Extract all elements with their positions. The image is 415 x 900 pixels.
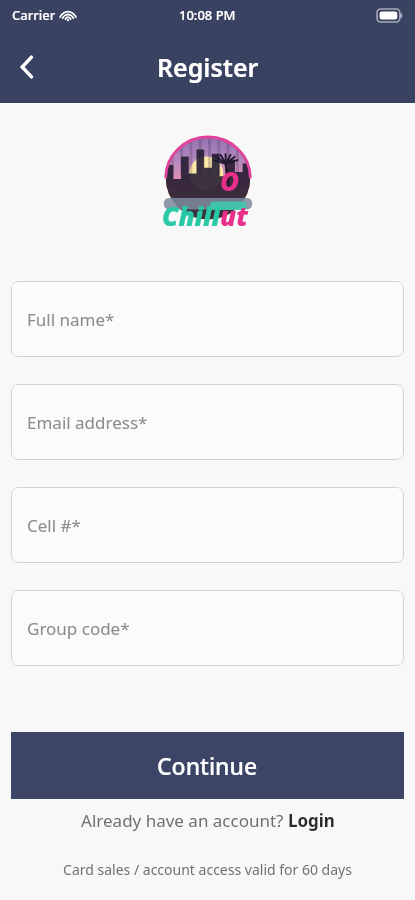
staticText: 10:08 PM: [179, 6, 236, 24]
staticText: Register: [157, 50, 259, 84]
staticText: Email address*: [27, 411, 148, 434]
button[interactable]: Group code*: [11, 590, 404, 666]
button[interactable]: Email address*: [11, 384, 404, 460]
button[interactable]: Cell #*: [11, 487, 404, 563]
staticText: Carrier: [12, 6, 56, 24]
button[interactable]: Full name*: [11, 281, 404, 357]
staticText: Group code*: [27, 617, 130, 640]
button[interactable]: Back: [0, 40, 54, 94]
button[interactable]: Continue: [11, 732, 404, 799]
staticText: Chill: [162, 198, 220, 233]
staticText: Card sales / account access valid for 60…: [63, 860, 352, 879]
button[interactable]: Already have an account? Login: [0, 806, 415, 835]
staticText: Continue: [157, 750, 258, 781]
staticText: Out: [220, 163, 254, 233]
staticText: Already have an account? Login: [81, 809, 335, 832]
staticText: Cell #*: [27, 514, 81, 537]
staticText: Full name*: [27, 308, 115, 331]
